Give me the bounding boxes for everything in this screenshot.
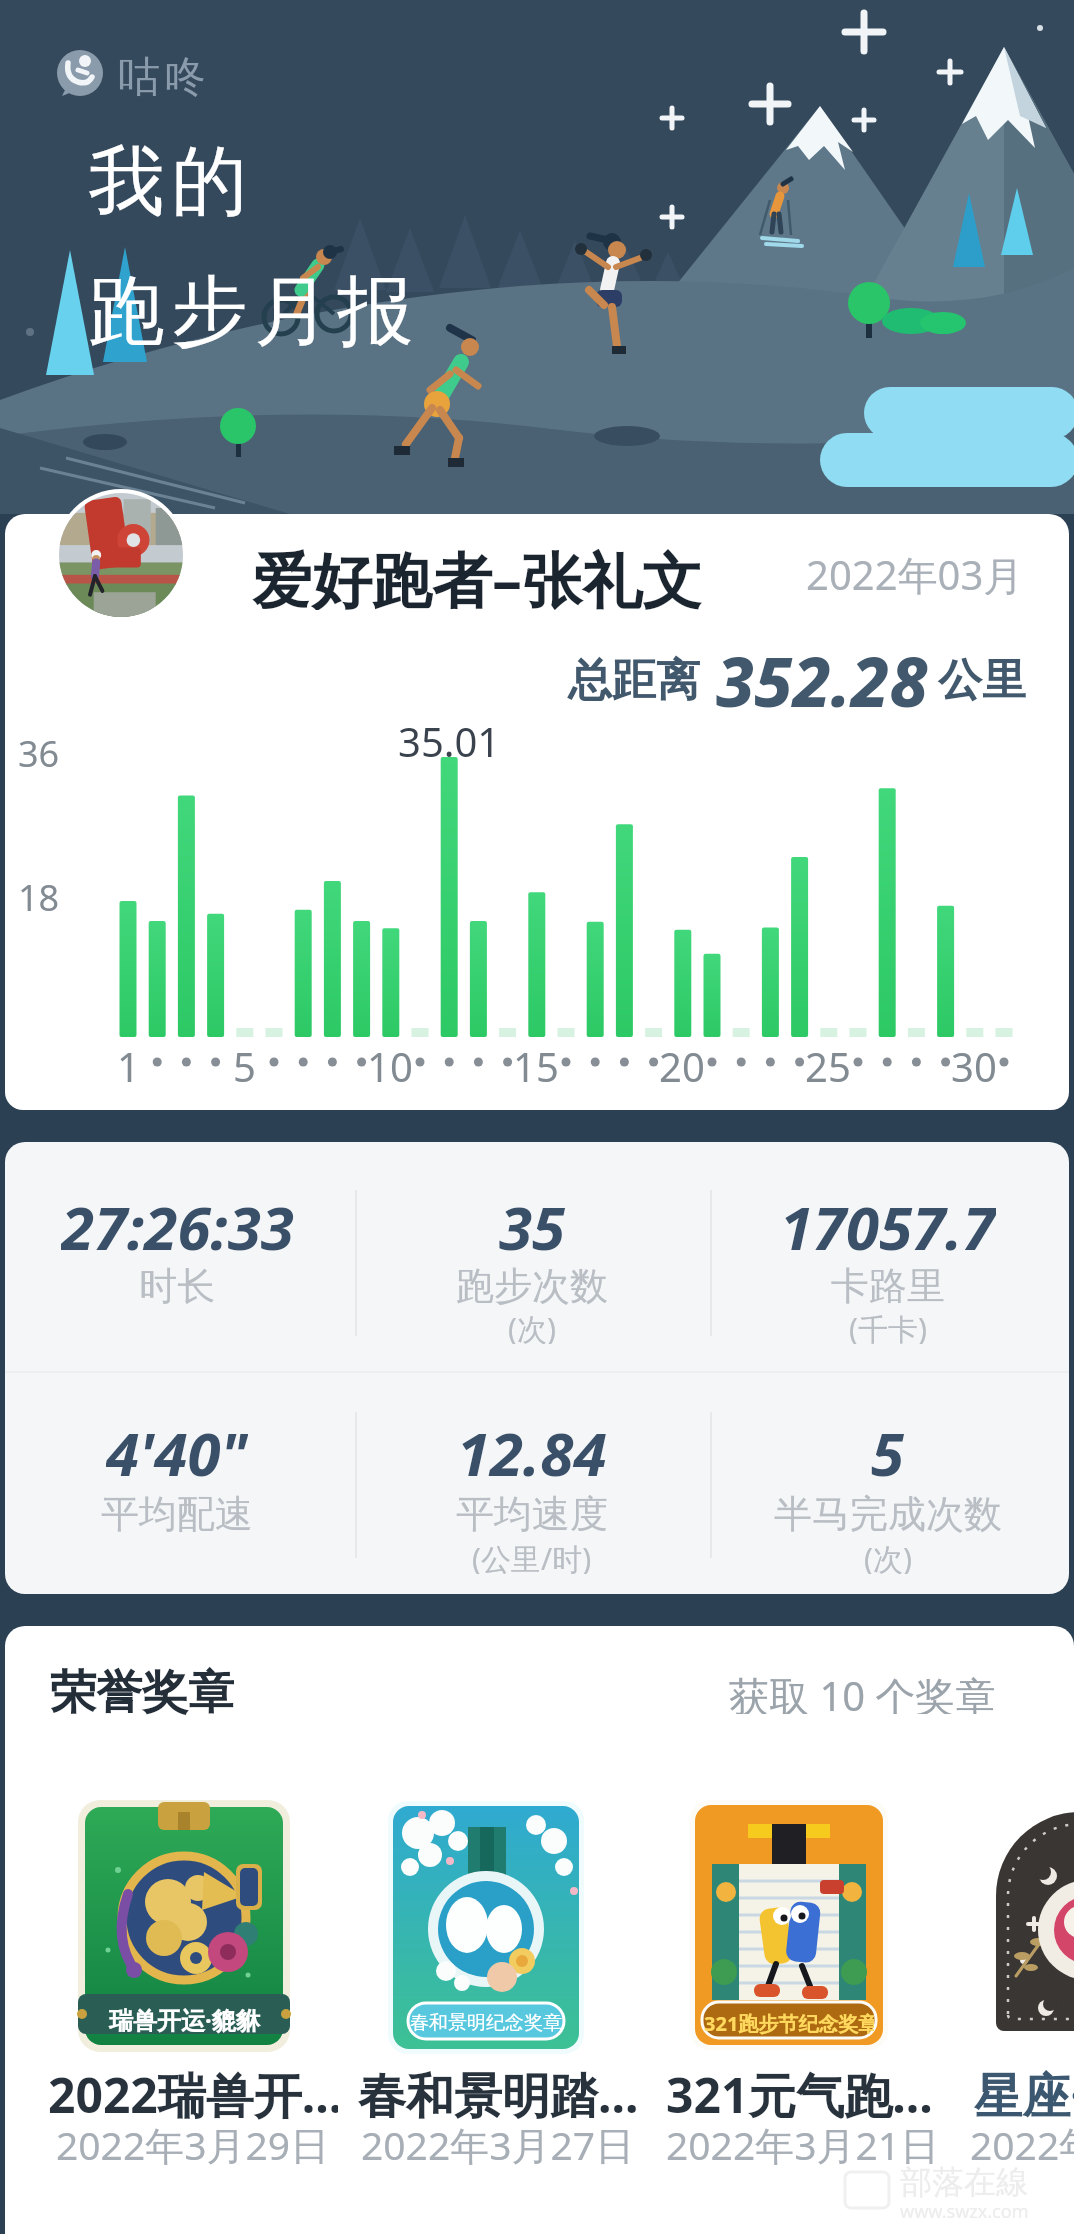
staticText: 36 [18, 729, 60, 771]
button[interactable]: 获取 10 个奖章 [640, 1668, 996, 1714]
staticText: 跑步次数 [456, 1262, 608, 1306]
staticText: 平均配速 [101, 1490, 253, 1534]
staticText: 半马完成次数 [774, 1490, 1002, 1534]
staticText: 星座· [974, 2062, 1074, 2122]
staticText: 4'40" [106, 1412, 248, 1490]
staticText: 10 [367, 1039, 413, 1085]
staticText: 15 [513, 1039, 559, 1085]
staticText: 我的 [85, 134, 251, 230]
staticText: 2022瑞兽开... [48, 2062, 338, 2122]
staticText: 352.28 [716, 634, 928, 718]
staticText: 瑞兽开运·貔貅 [109, 2003, 260, 2036]
button[interactable] [55, 489, 187, 621]
button[interactable] [690, 1800, 888, 2050]
staticText: 春和景明纪念奖章 [410, 2011, 562, 2035]
staticText: 爱好跑者–张礼文 [252, 538, 702, 610]
staticText: 17057.7 [780, 1186, 996, 1264]
staticText: 1 [117, 1039, 140, 1085]
staticText: 321元气跑... [666, 2062, 933, 2122]
button[interactable] [388, 1801, 584, 2054]
staticText: 2022年3月27日 [361, 2118, 635, 2168]
button[interactable] [78, 1800, 290, 2052]
staticText: 部落在線 [900, 2162, 1028, 2200]
staticText: 2022年03月 [806, 547, 1024, 595]
staticText: 5 [233, 1039, 256, 1085]
staticText: 获取 10 个奖章 [729, 1668, 996, 1714]
staticText: 321跑步节纪念奖章 [704, 2010, 874, 2037]
staticText: 春和景明踏... [358, 2062, 639, 2122]
staticText: 时长 [139, 1262, 215, 1306]
staticText: 卡路里 [831, 1262, 945, 1306]
button[interactable]: 咕咚 [54, 46, 234, 100]
staticText: 荣誉奖章 [50, 1664, 234, 1716]
staticText: (千卡) [849, 1308, 927, 1344]
staticText: 25 [805, 1039, 851, 1085]
staticText: 总距离 [568, 653, 700, 708]
button[interactable] [55, 520, 1035, 630]
staticText: 35 [499, 1186, 566, 1264]
button[interactable] [996, 1812, 1074, 2031]
staticText: 5 [871, 1412, 905, 1490]
staticText: 35.01 [398, 714, 501, 760]
staticText: 咕咚 [116, 51, 208, 104]
staticText: 2022年3月21日 [666, 2118, 940, 2168]
staticText: 18 [18, 873, 60, 915]
staticText: 跑步月报 [85, 264, 417, 360]
staticText: 20 [659, 1039, 705, 1085]
staticText: 2022年3 [970, 2118, 1074, 2168]
staticText: (公里/时) [472, 1538, 592, 1574]
staticText: 12.84 [457, 1412, 607, 1490]
staticText: 公里 [938, 653, 1026, 708]
staticText: www.swzx.com [900, 2199, 1029, 2224]
staticText: 27:26:33 [61, 1186, 294, 1264]
staticText: 2022年3月29日 [56, 2118, 330, 2168]
staticText: 平均速度 [456, 1490, 608, 1534]
staticText: 30 [951, 1039, 997, 1085]
staticText: (次) [864, 1538, 912, 1574]
staticText: (次) [508, 1308, 556, 1344]
